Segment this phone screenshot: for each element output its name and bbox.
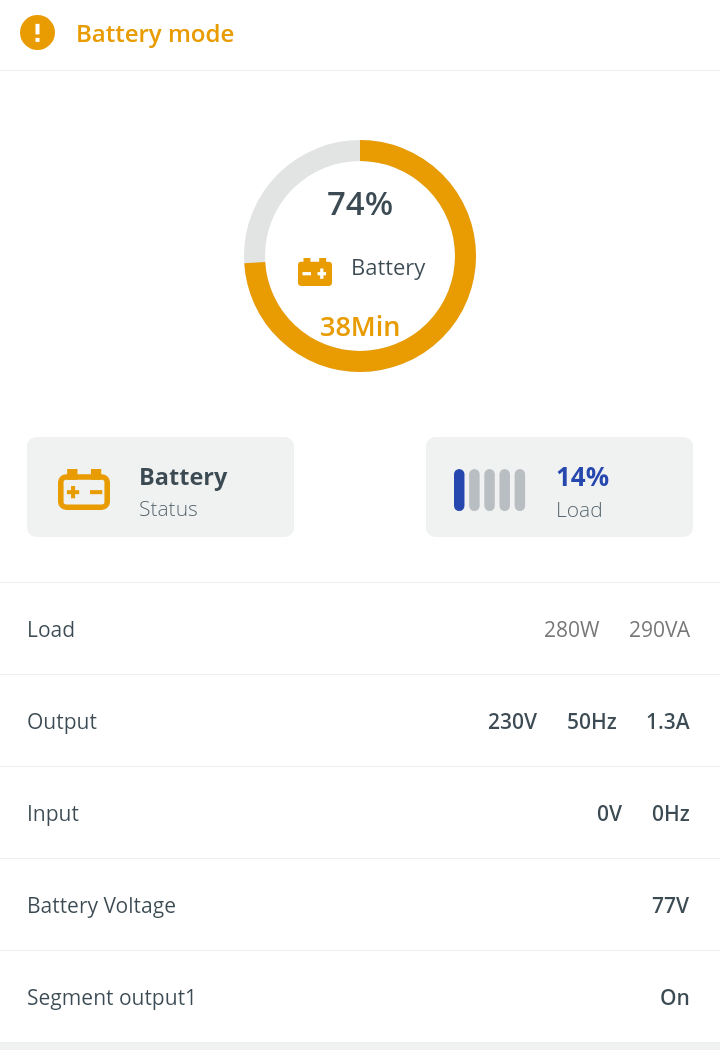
staticText: Output bbox=[27, 707, 97, 736]
staticText: Segment output1 bbox=[27, 983, 198, 1012]
staticText: Status bbox=[139, 494, 198, 523]
staticText: Load bbox=[556, 495, 603, 524]
button[interactable]: Output bbox=[0, 675, 720, 767]
staticText: 77V bbox=[652, 891, 690, 920]
button[interactable]: Load bbox=[0, 583, 720, 675]
staticText: 74% bbox=[327, 180, 394, 225]
staticText: On bbox=[660, 983, 690, 1012]
other: Alert bbox=[20, 15, 55, 50]
staticText: 290VA bbox=[629, 615, 690, 644]
staticText: Battery bbox=[139, 460, 228, 492]
staticText: Battery bbox=[351, 252, 426, 282]
staticText: 14% bbox=[556, 458, 610, 493]
button[interactable]: Battery bbox=[27, 437, 294, 537]
staticText: 38Min bbox=[320, 307, 401, 344]
staticText: 0V bbox=[597, 799, 623, 828]
staticText: 230V bbox=[488, 707, 538, 736]
staticText: Battery mode bbox=[76, 16, 235, 49]
staticText: Load bbox=[27, 615, 76, 644]
button[interactable]: Alert bbox=[0, 0, 720, 70]
staticText: 50Hz bbox=[567, 707, 617, 736]
button[interactable]: Battery Voltage bbox=[0, 859, 720, 951]
button[interactable]: 14% bbox=[426, 437, 693, 537]
staticText: Input bbox=[27, 799, 79, 828]
staticText: Battery Voltage bbox=[27, 891, 176, 920]
staticText: 0Hz bbox=[652, 799, 690, 828]
staticText: 1.3A bbox=[646, 707, 690, 736]
button[interactable]: Segment output1 bbox=[0, 951, 720, 1043]
button[interactable]: Input bbox=[0, 767, 720, 859]
staticText: 280W bbox=[544, 615, 600, 644]
